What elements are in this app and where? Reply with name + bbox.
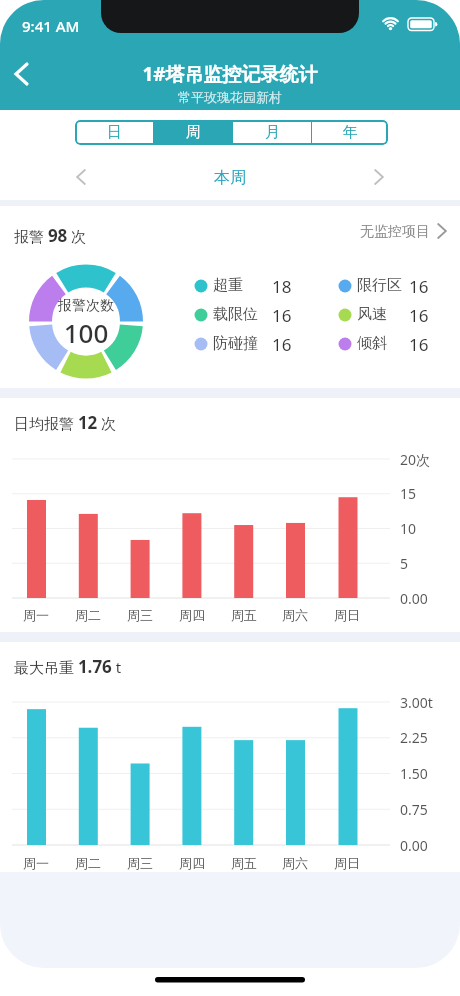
- staticText: 1#塔吊监控记录统计: [30, 61, 430, 87]
- staticText: 周一: [16, 607, 56, 623]
- staticText: 月: [265, 123, 280, 142]
- staticText: 年: [343, 123, 358, 142]
- staticText: 周一: [16, 855, 56, 871]
- staticText: 周六: [275, 855, 315, 871]
- staticText: 周二: [68, 855, 108, 871]
- staticText: 常平玫瑰花园新村: [80, 89, 380, 105]
- staticText: 20次: [400, 450, 431, 469]
- staticText: 周三: [120, 607, 160, 623]
- staticText: 18: [272, 275, 292, 298]
- staticText: 倾斜: [357, 334, 387, 353]
- button[interactable]: 月: [233, 120, 311, 145]
- staticText: 16: [409, 304, 429, 327]
- staticText: 限行区: [357, 276, 402, 295]
- staticText: 周六: [275, 607, 315, 623]
- staticText: 1.50: [400, 764, 428, 783]
- staticText: 最大吊重 1.76 t: [14, 655, 122, 678]
- staticText: 周日: [327, 855, 367, 871]
- staticText: 无监控项目: [360, 223, 430, 241]
- staticText: 10: [400, 519, 417, 538]
- staticText: 9:41 AM: [22, 16, 80, 36]
- button[interactable]: [364, 160, 396, 194]
- staticText: 16: [272, 333, 292, 356]
- staticText: 周四: [172, 607, 212, 623]
- staticText: 载限位: [213, 305, 258, 324]
- staticText: 周: [186, 123, 201, 142]
- staticText: 16: [409, 333, 429, 356]
- staticText: 周二: [68, 607, 108, 623]
- button[interactable]: [66, 160, 98, 194]
- staticText: 日均报警 12 次: [14, 411, 117, 434]
- staticText: 0.00: [400, 589, 428, 608]
- staticText: 风速: [357, 305, 387, 324]
- staticText: 0.00: [400, 836, 428, 855]
- button[interactable]: [6, 58, 42, 92]
- staticText: 周四: [172, 855, 212, 871]
- staticText: 本周: [170, 168, 290, 188]
- button[interactable]: 日: [75, 120, 153, 145]
- staticText: 报警 98 次: [14, 224, 87, 247]
- staticText: 周五: [224, 607, 264, 623]
- staticText: 报警次数: [26, 297, 146, 315]
- staticText: 2.25: [400, 728, 428, 747]
- staticText: 周日: [327, 607, 367, 623]
- button[interactable]: 周: [154, 120, 232, 145]
- staticText: 周三: [120, 855, 160, 871]
- staticText: 周五: [224, 855, 264, 871]
- staticText: 100: [26, 315, 146, 350]
- staticText: 超重: [213, 276, 243, 295]
- button[interactable]: 年: [312, 120, 388, 145]
- staticText: 日: [107, 123, 122, 142]
- staticText: 16: [409, 275, 429, 298]
- staticText: 0.75: [400, 800, 428, 819]
- staticText: 16: [272, 304, 292, 327]
- staticText: 5: [400, 554, 409, 573]
- staticText: 防碰撞: [213, 334, 258, 353]
- staticText: 3.00t: [400, 693, 433, 712]
- button[interactable]: 无监控项目: [360, 220, 452, 244]
- staticText: 15: [400, 484, 417, 503]
